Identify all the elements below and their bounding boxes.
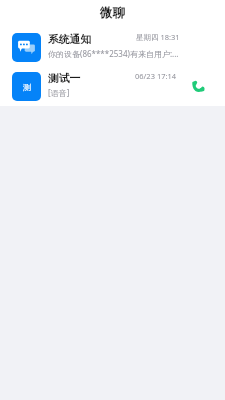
staticText: 测试一 [48,72,81,86]
staticText: 星期四 18:31 [136,32,180,42]
staticText: 06/23 17:14 [135,71,177,81]
staticText: 微聊 [100,5,125,21]
button[interactable]: 系统通知 [0,28,225,66]
button[interactable]: 测 [0,67,225,105]
staticText: 测 [23,82,31,92]
staticText: [语音] [48,87,70,98]
staticText: 你的设备(86****2534)有来自用户:... [48,48,179,59]
staticText: 系统通知 [48,33,92,47]
button[interactable]: Call [192,80,205,93]
